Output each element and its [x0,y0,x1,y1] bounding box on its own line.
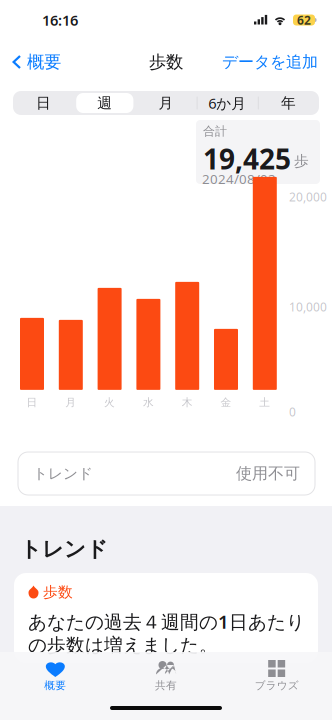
button[interactable]: 歩数 [14,573,318,663]
staticText: 歩数 [43,583,73,601]
staticText: 使用不可 [236,464,300,483]
staticText: 火 [104,396,115,409]
staticText: 年 [281,94,296,112]
button[interactable]: ブラウズ [221,652,332,692]
staticText: 歩数 [149,51,183,73]
staticText: 日 [26,396,37,409]
button[interactable]: 週 [74,91,135,115]
staticText: あなたの過去４週間の1日あたりの歩数は増えました。 [28,609,305,657]
staticText: 19,425 [203,140,291,177]
staticText: 水 [143,396,154,409]
staticText: 概要 [44,679,66,692]
staticText: 2024/08/03 [202,170,276,188]
button[interactable]: データを追加 [222,44,332,80]
staticText: 金 [220,396,231,409]
staticText: 共有 [155,679,177,692]
button[interactable]: 月 [135,91,197,115]
button[interactable]: 共有 [111,652,221,692]
staticText: 週 [97,94,112,112]
staticText: 概要 [27,51,61,73]
button[interactable]: 年 [258,91,319,115]
staticText: データを追加 [222,52,318,72]
staticText: 16:16 [42,10,78,30]
staticText: トレンド [20,536,108,562]
staticText: ブラウズ [255,679,299,692]
button[interactable]: トレンド [18,452,315,495]
staticText: 木 [182,396,193,409]
button[interactable]: 概要 [0,43,61,81]
staticText: 62 [297,12,311,28]
staticText: 0 [289,404,296,420]
staticText: 歩 [294,152,309,170]
button[interactable]: 概要 [0,652,111,692]
staticText: 土 [259,396,270,409]
button[interactable]: 6か月 [197,91,258,115]
staticText: 10,000 [289,299,327,315]
button[interactable]: 日 [13,91,74,115]
staticText: 月 [158,94,173,112]
staticText: 20,000 [289,189,327,205]
staticText: トレンド [33,464,93,482]
staticText: 月 [65,396,76,409]
staticText: 日 [36,94,51,112]
staticText: 合計 [203,124,227,139]
staticText: 6か月 [208,93,246,113]
